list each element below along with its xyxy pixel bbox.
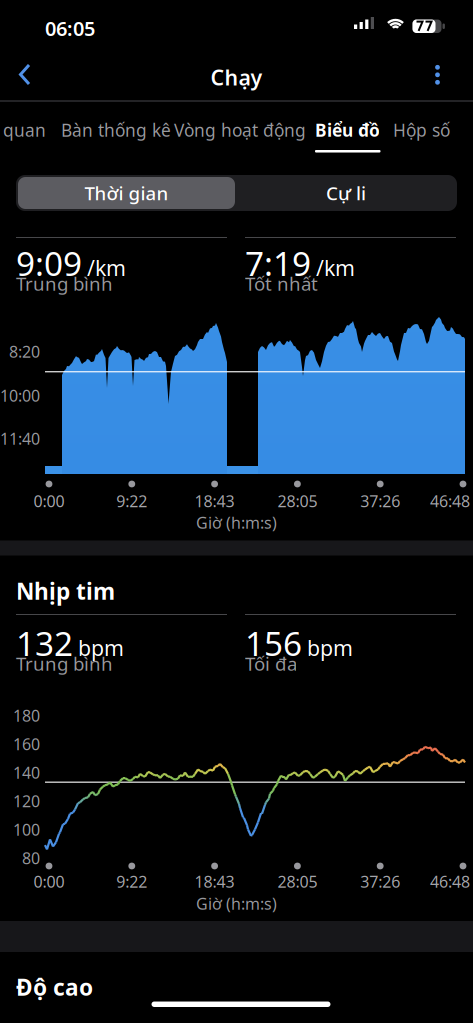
staticText: bpm — [78, 634, 124, 662]
staticText: 46:48 — [430, 871, 470, 892]
staticText: /km — [316, 254, 355, 282]
staticText: 156 — [245, 621, 302, 665]
button[interactable]: Thời gian — [18, 177, 235, 209]
button[interactable]: Bàn thống kê — [60, 110, 172, 150]
staticText: 140 — [13, 762, 40, 783]
staticText: 46:48 — [430, 490, 470, 512]
staticText: 180 — [13, 705, 40, 726]
staticText: Cự li — [326, 181, 366, 205]
staticText: 9:22 — [116, 871, 147, 892]
staticText: Vòng hoạt động — [174, 118, 306, 141]
staticText: 18:43 — [195, 871, 235, 892]
staticText: Tốt nhất — [245, 271, 318, 296]
staticText: 7:19 — [245, 241, 311, 285]
staticText: 10:00 — [0, 385, 40, 406]
staticText: quan — [3, 118, 46, 141]
staticText: 80 — [22, 847, 40, 869]
staticText: Nhịp tim — [16, 576, 115, 606]
staticText: 37:26 — [360, 871, 400, 892]
staticText: 9:09 — [16, 241, 82, 285]
button[interactable]: Cự li — [237, 177, 455, 209]
staticText: Giờ (h:m:s) — [196, 512, 277, 533]
staticText: 100 — [13, 819, 40, 840]
staticText: Trung bình — [16, 271, 113, 296]
staticText: /km — [87, 254, 126, 282]
staticText: Trung bình — [16, 651, 113, 676]
staticText: Biểu đồ — [315, 118, 380, 141]
staticText: 11:40 — [0, 428, 40, 449]
staticText: 37:26 — [360, 490, 400, 512]
staticText: 120 — [13, 790, 40, 812]
staticText: 06:05 — [45, 15, 95, 42]
button[interactable]: Hộp số — [389, 110, 453, 150]
staticText: Bàn thống kê — [61, 118, 171, 141]
staticText: Giờ (h:m:s) — [196, 893, 277, 914]
button[interactable]: More options — [416, 52, 460, 96]
staticText: Chạy — [210, 63, 262, 91]
staticText: Độ cao — [16, 972, 93, 1002]
staticText: bpm — [307, 634, 353, 662]
button[interactable]: Back — [3, 52, 47, 96]
staticText: 9:22 — [116, 490, 147, 512]
staticText: Thời gian — [84, 181, 168, 205]
button[interactable]: quan — [0, 110, 52, 150]
staticText: 28:05 — [277, 490, 317, 512]
staticText: 8:20 — [9, 341, 40, 362]
button[interactable]: Vòng hoạt động — [170, 110, 310, 150]
staticText: 0:00 — [33, 871, 64, 892]
staticText: 132 — [16, 621, 73, 665]
staticText: 18:43 — [195, 490, 235, 512]
staticText: Hộp số — [393, 118, 450, 141]
button[interactable]: Biểu đồ — [310, 110, 384, 150]
staticText: 28:05 — [277, 871, 317, 892]
staticText: 0:00 — [33, 490, 64, 512]
staticText: 160 — [13, 733, 40, 755]
staticText: Tối đa — [245, 651, 297, 676]
